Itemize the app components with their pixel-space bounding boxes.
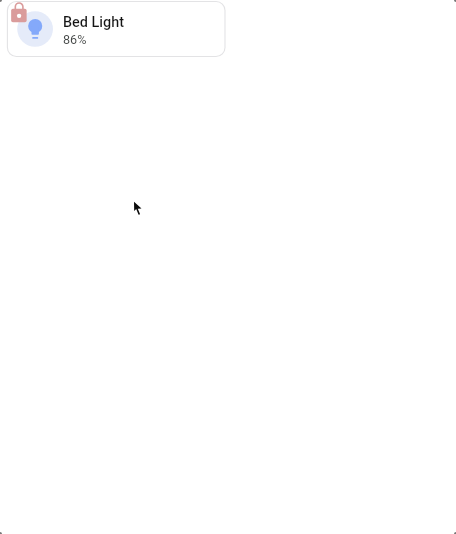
staticText: 86% (63, 32, 87, 47)
button[interactable]: Locked (11, 2, 27, 22)
staticText: Bed Light (63, 14, 124, 31)
button[interactable]: Bed Light, 86 percent (7, 1, 226, 57)
